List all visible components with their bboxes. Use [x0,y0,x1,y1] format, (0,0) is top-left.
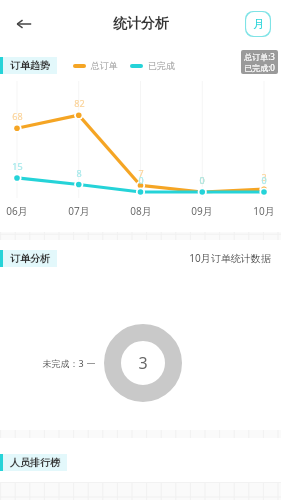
staticText: 总订单:3 [244,51,275,62]
staticText: 10月订单统计数据 [189,251,271,265]
staticText: 06月 [6,204,28,218]
staticText: 82 [74,97,85,109]
staticText: 月 [253,17,264,31]
staticText: 10月 [253,204,275,218]
staticText: 统计分析 [113,15,169,33]
button[interactable]: Back [4,4,44,44]
staticText: 0 [261,174,267,186]
staticText: 7 [138,167,144,179]
staticText: 总订单 [91,60,118,71]
staticText: 3 [138,352,148,374]
staticText: 订单趋势 [10,59,50,72]
staticText: 人员排行榜 [10,456,60,469]
staticText: 订单分析 [10,252,50,265]
staticText: 8 [76,167,82,179]
staticText: 09月 [191,204,213,218]
staticText: 0 [199,174,205,186]
staticText: 0 [138,174,144,186]
staticText: 08月 [130,204,152,218]
staticText: 07月 [68,204,90,218]
staticText: 3 [261,171,267,183]
button[interactable]: 月 [245,11,271,37]
staticText: 15 [12,160,23,172]
staticText: 未完成：3 [42,357,84,369]
staticText: 0 [199,174,205,186]
staticText: 已完成:0 [244,62,275,73]
staticText: 68 [12,110,23,122]
staticText: 已完成 [148,60,175,71]
